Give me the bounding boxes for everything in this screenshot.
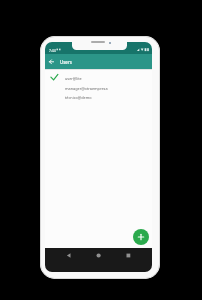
button[interactable]: técnico@demo bbox=[65, 93, 135, 101]
staticText: Users bbox=[60, 59, 72, 65]
button[interactable] bbox=[45, 248, 152, 272]
staticText: user@lite bbox=[65, 76, 82, 81]
button[interactable]: manager@otraempresa bbox=[65, 84, 135, 92]
button[interactable] bbox=[133, 229, 149, 245]
button[interactable] bbox=[45, 54, 152, 69]
button[interactable]: user@lite bbox=[65, 74, 135, 82]
staticText: 7:44 bbox=[49, 48, 56, 53]
staticText: manager@otraempresa bbox=[65, 86, 108, 91]
staticText: técnico@demo bbox=[65, 95, 92, 100]
